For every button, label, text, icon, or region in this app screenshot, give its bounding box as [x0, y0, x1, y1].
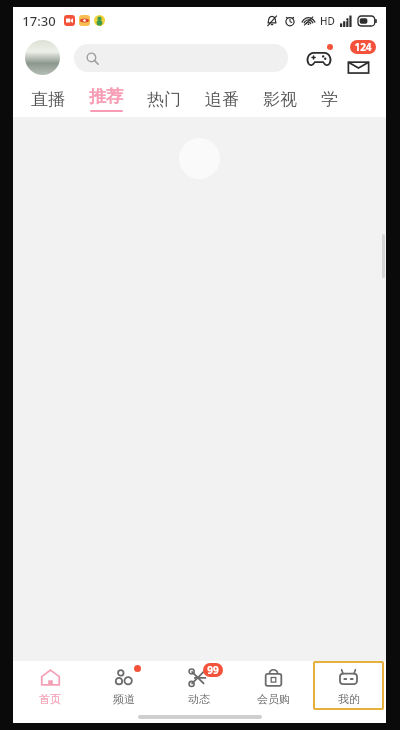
staticText: 会员购 — [257, 692, 290, 706]
button[interactable]: 学 — [309, 81, 350, 117]
staticText: 影视 — [263, 89, 297, 110]
staticText: 追番 — [205, 89, 239, 110]
staticText: HD — [320, 14, 335, 28]
button[interactable]: 追番 — [193, 81, 251, 117]
staticText: 17:30 — [22, 12, 56, 30]
button[interactable]: 频道 — [87, 661, 161, 710]
staticText: 热门 — [147, 89, 181, 110]
staticText: 124 — [354, 40, 372, 54]
button[interactable]: 99 — [161, 661, 236, 710]
button[interactable]: 影视 — [251, 81, 309, 117]
button[interactable]: 我的 — [313, 661, 384, 710]
button[interactable]: Messages — [340, 40, 376, 76]
staticText: 99 — [207, 663, 219, 677]
staticText: 首页 — [39, 692, 61, 706]
staticText: 推荐 — [89, 86, 123, 107]
button[interactable]: 会员购 — [236, 661, 311, 710]
staticText: 动态 — [188, 692, 210, 706]
button[interactable]: 热门 — [135, 81, 193, 117]
staticText: 直播 — [31, 89, 65, 110]
staticText: 频道 — [113, 692, 135, 706]
button[interactable]: Games — [302, 41, 336, 75]
button[interactable]: Search — [74, 44, 288, 72]
button[interactable]: 首页 — [13, 661, 87, 710]
button[interactable]: Profile avatar — [25, 40, 60, 75]
button[interactable]: 直播 — [19, 81, 77, 117]
staticText: 我的 — [338, 692, 360, 706]
staticText: 学 — [321, 89, 338, 110]
button[interactable]: 推荐 — [77, 81, 135, 117]
